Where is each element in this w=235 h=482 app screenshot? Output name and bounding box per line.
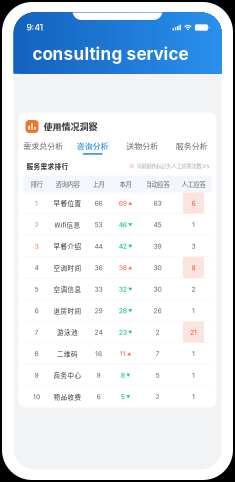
staticText: 38 — [119, 264, 127, 272]
staticText: 3 — [191, 242, 195, 250]
staticText: 8 — [121, 371, 125, 379]
staticText: 2 — [34, 221, 38, 229]
button[interactable]: 送物分析 — [117, 138, 167, 156]
staticText: 9 — [34, 371, 38, 379]
staticText: 7 — [155, 350, 159, 358]
staticText: 30 — [153, 285, 161, 293]
staticText: 8 — [34, 350, 38, 358]
staticText: 69 — [119, 199, 127, 207]
staticText: 44 — [94, 242, 102, 250]
staticText: 咨询内容 — [55, 179, 79, 189]
staticText: 空调信息 — [53, 284, 81, 294]
staticText: 退房时间 — [53, 306, 81, 315]
staticText: 人工应答 — [181, 179, 205, 189]
staticText: 29 — [94, 307, 102, 315]
staticText: 11 — [120, 350, 126, 358]
staticText: 1 — [192, 350, 195, 358]
staticText: 早餐位置 — [53, 198, 81, 208]
staticText: 服务需求排行 — [26, 161, 68, 171]
button[interactable]: 需求总分析 — [18, 138, 68, 156]
staticText: 1 — [192, 371, 195, 379]
staticText: 24 — [94, 328, 102, 336]
staticText: 6 — [34, 307, 38, 315]
staticText: 物品收费 — [53, 392, 81, 401]
staticText: 9:41 — [26, 22, 43, 33]
button[interactable]: 咨询分析 — [68, 138, 117, 156]
staticText: 33 — [94, 285, 102, 293]
staticText: 7 — [34, 328, 38, 336]
staticText: 66 — [94, 199, 102, 207]
staticText: 39 — [153, 242, 161, 250]
staticText: 1 — [192, 393, 195, 401]
staticText: 2 — [155, 393, 159, 401]
staticText: 9 — [96, 371, 100, 379]
staticText: 32 — [119, 285, 127, 293]
staticText: 需求总分析 — [23, 140, 63, 152]
staticText: 当前颜色标记为人工应答次数≥5 — [136, 162, 209, 170]
staticText: 商务中心 — [53, 370, 81, 380]
staticText: 5 — [34, 285, 38, 293]
staticText: 53 — [94, 221, 102, 229]
staticText: 排行 — [30, 179, 42, 189]
staticText: 21 — [190, 328, 197, 336]
staticText: 服务分析 — [176, 140, 208, 152]
staticText: 16 — [95, 350, 102, 358]
staticText: 1 — [192, 307, 195, 315]
staticText: 5 — [121, 393, 125, 401]
staticText: 23 — [119, 328, 127, 336]
staticText: 26 — [153, 307, 161, 315]
staticText: Wifi信息 — [54, 220, 80, 229]
staticText: 空调时间 — [53, 263, 81, 272]
staticText: 使用情况洞察 — [43, 120, 97, 133]
staticText: 本月 — [119, 179, 131, 189]
staticText: 二维码 — [57, 349, 78, 358]
staticText: 6 — [96, 393, 100, 401]
staticText: 6 — [191, 199, 195, 207]
staticText: 10 — [33, 393, 40, 401]
staticText: 上月 — [92, 179, 104, 189]
staticText: 46 — [119, 221, 127, 229]
staticText: 2 — [155, 328, 159, 336]
staticText: 5 — [155, 371, 159, 379]
staticText: 42 — [119, 242, 127, 250]
staticText: 63 — [153, 199, 161, 207]
staticText: consulting service — [32, 43, 188, 64]
staticText: 游泳池 — [57, 327, 78, 337]
staticText: 8 — [191, 264, 195, 272]
staticText: 3 — [34, 242, 38, 250]
staticText: 送物分析 — [126, 140, 158, 152]
staticText: 4 — [34, 264, 38, 272]
staticText: 自动应答 — [145, 179, 169, 189]
staticText: 早餐介绍 — [53, 241, 81, 251]
staticText: 28 — [119, 307, 127, 315]
button[interactable]: 服务分析 — [167, 138, 216, 156]
staticText: 30 — [153, 264, 161, 272]
staticText: 1 — [192, 221, 195, 229]
staticText: 45 — [153, 221, 161, 229]
staticText: 1 — [35, 199, 38, 207]
staticText: 36 — [94, 264, 102, 272]
staticText: 咨询分析 — [77, 140, 109, 152]
staticText: 2 — [191, 285, 195, 293]
